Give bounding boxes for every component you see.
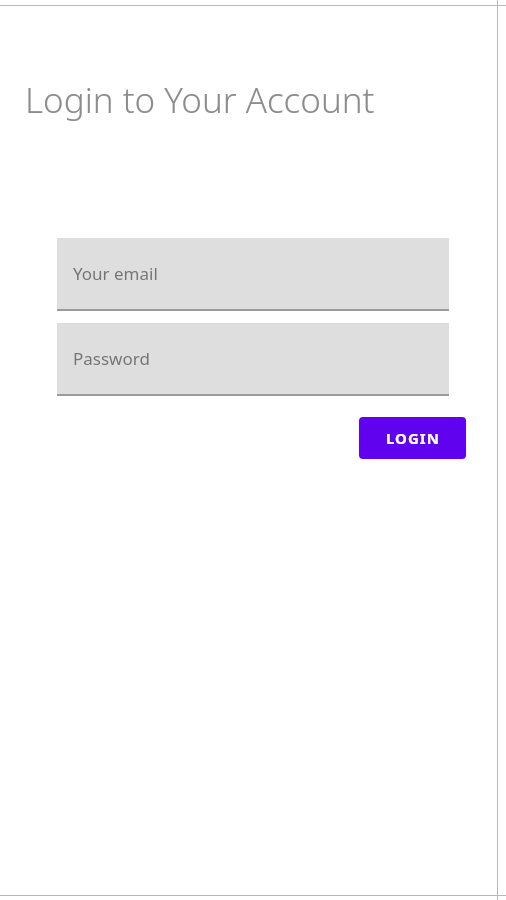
staticText: Login to Your Account: [25, 76, 375, 124]
button[interactable]: Your email: [57, 238, 449, 311]
button[interactable]: LOGIN: [359, 417, 466, 459]
staticText: Password: [73, 347, 150, 370]
staticText: Your email: [73, 262, 158, 285]
button[interactable]: Password: [57, 323, 449, 396]
staticText: LOGIN: [386, 428, 440, 448]
